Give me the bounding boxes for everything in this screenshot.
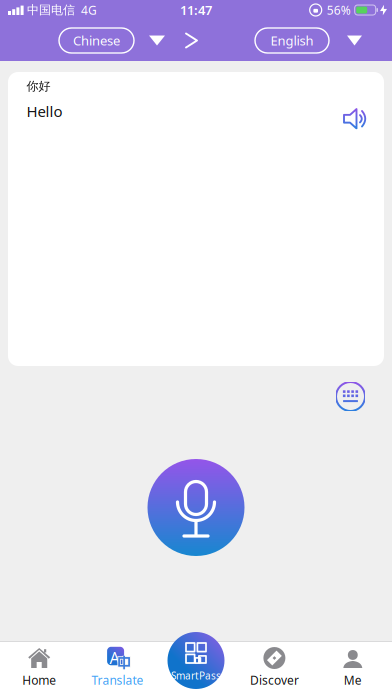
button[interactable]: Discover	[235, 632, 314, 696]
staticText: SmartPass	[171, 669, 221, 682]
staticText: A	[110, 647, 120, 668]
staticText: Home	[22, 672, 56, 688]
staticText: 56%	[327, 2, 351, 18]
button[interactable]: Me	[314, 632, 392, 696]
button[interactable]: Swap languages	[186, 33, 197, 47]
staticText: English	[270, 32, 313, 49]
button[interactable]: SmartPass	[157, 632, 235, 696]
staticText: 中国电信	[27, 3, 75, 17]
button[interactable]: Chinese	[59, 28, 134, 53]
button[interactable]: Choose source language	[149, 35, 165, 45]
button[interactable]: Choose target language	[347, 35, 362, 45]
button[interactable]: A	[78, 632, 157, 696]
staticText: Translate	[92, 672, 144, 688]
button[interactable]: Speak translation	[343, 108, 368, 129]
staticText: 你好	[26, 79, 50, 94]
staticText: Hello	[26, 101, 62, 121]
staticText: Chinese	[73, 32, 120, 49]
staticText: Discover	[250, 672, 299, 688]
staticText: 4G	[81, 2, 97, 18]
staticText: 11:47	[180, 1, 212, 19]
staticText: Me	[344, 672, 362, 688]
button[interactable]: Home	[0, 632, 78, 696]
button[interactable]: Keyboard input	[336, 382, 365, 411]
button[interactable]: Speak to translate	[147, 459, 244, 556]
button[interactable]: English	[255, 28, 329, 53]
